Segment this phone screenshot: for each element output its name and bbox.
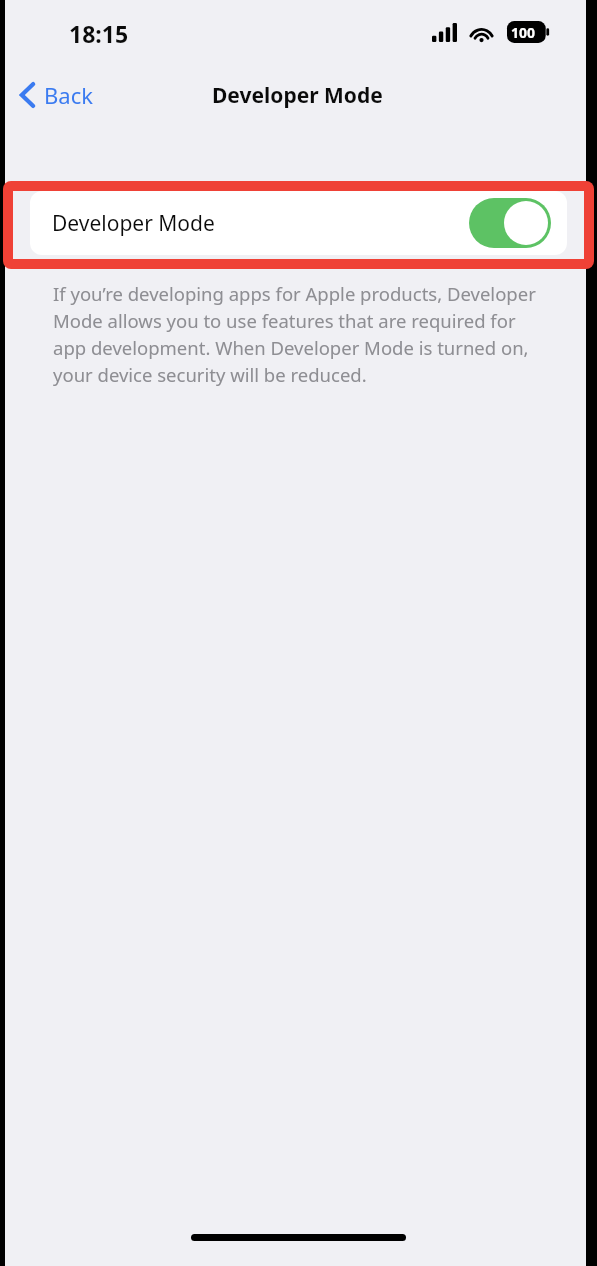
- button[interactable]: Developer Mode toggle, on: [469, 198, 551, 248]
- staticText: 100: [511, 23, 536, 42]
- button[interactable]: Back: [14, 76, 99, 114]
- staticText: If you’re developing apps for Apple prod…: [53, 281, 549, 388]
- button[interactable]: Developer Mode: [30, 191, 567, 255]
- staticText: Developer Mode: [52, 209, 215, 238]
- staticText: 18:15: [69, 18, 129, 49]
- staticText: Developer Mode: [212, 81, 383, 110]
- staticText: Back: [44, 80, 93, 110]
